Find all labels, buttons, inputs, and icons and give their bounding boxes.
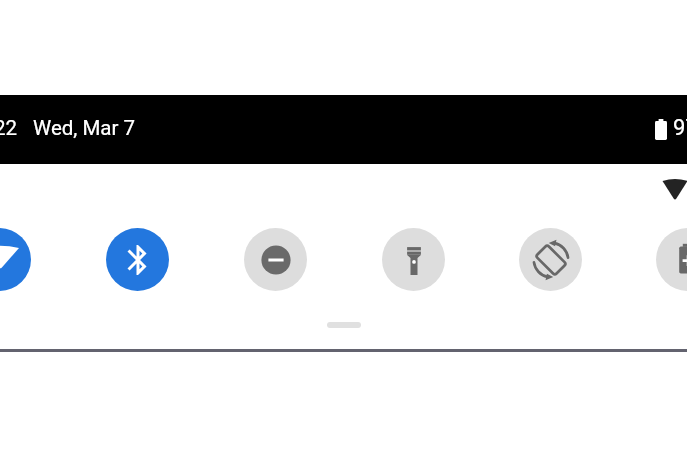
staticText: 22: [0, 116, 18, 140]
button[interactable]: Bluetooth: [106, 228, 169, 291]
button[interactable]: Battery saver: [656, 228, 687, 291]
button[interactable]: Expand quick settings: [327, 322, 361, 328]
button[interactable]: Status bar: [0, 95, 687, 164]
button[interactable]: Auto rotate: [519, 228, 582, 291]
button[interactable]: Do not disturb: [244, 228, 307, 291]
button[interactable]: Flashlight: [382, 228, 445, 291]
button[interactable]: Wi-Fi: [0, 228, 31, 291]
staticText: 97: [673, 115, 687, 141]
staticText: Wed, Mar 7: [33, 116, 136, 140]
